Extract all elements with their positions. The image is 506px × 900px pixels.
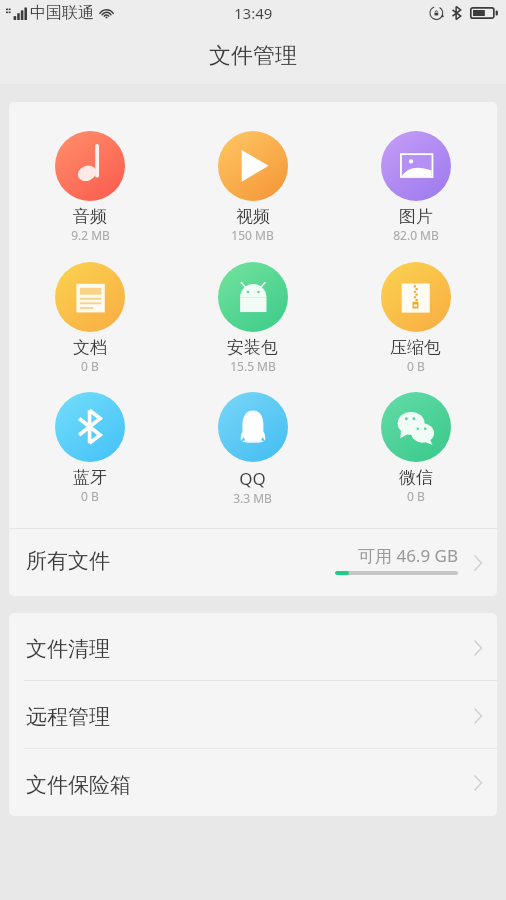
other: Open 文件保险箱 (468, 773, 487, 792)
staticText: 0 B (81, 358, 99, 374)
other: Open 文件清理 (468, 638, 487, 657)
staticText: 远程管理 (26, 704, 110, 730)
staticText: 所有文件 (26, 548, 110, 574)
button[interactable]: 所有文件 (9, 529, 497, 596)
staticText: 可用 46.9 GB (358, 544, 458, 567)
button[interactable]: 微信 (334, 392, 497, 504)
staticText: 0 B (407, 488, 425, 504)
staticText: 安装包 (227, 337, 278, 358)
staticText: 82.0 MB (393, 227, 439, 243)
button[interactable]: 文件清理 (9, 613, 497, 681)
button[interactable]: QQ (171, 392, 334, 506)
button[interactable]: 图片 (334, 131, 497, 243)
staticText: 0 B (81, 488, 99, 504)
staticText: 音频 (73, 206, 107, 227)
staticText: 15.5 MB (230, 358, 276, 374)
button[interactable]: 文件保险箱 (9, 749, 497, 816)
staticText: 蓝牙 (73, 467, 107, 488)
staticText: 微信 (399, 467, 433, 488)
staticText: 13:49 (234, 3, 273, 23)
button[interactable]: 安装包 (171, 262, 334, 374)
staticText: 文件管理 (209, 42, 297, 70)
button[interactable]: 音频 (9, 131, 171, 243)
staticText: 文档 (73, 337, 107, 358)
staticText: 3.3 MB (233, 490, 272, 506)
staticText: 图片 (399, 206, 433, 227)
button[interactable]: 文档 (9, 262, 171, 374)
other: Open 远程管理 (468, 706, 487, 725)
button[interactable]: 蓝牙 (9, 392, 171, 504)
staticText: 中国联通 (30, 3, 94, 23)
button[interactable]: 视频 (171, 131, 334, 243)
staticText: 文件保险箱 (26, 772, 131, 798)
staticText: 压缩包 (390, 337, 441, 358)
button[interactable]: 压缩包 (334, 262, 497, 374)
staticText: 视频 (236, 206, 270, 227)
button[interactable]: 远程管理 (9, 681, 497, 749)
staticText: 0 B (407, 358, 425, 374)
other: Open all files (468, 553, 487, 572)
staticText: QQ (239, 467, 266, 490)
staticText: 150 MB (231, 227, 274, 243)
staticText: 9.2 MB (71, 227, 110, 243)
staticText: 文件清理 (26, 636, 110, 662)
